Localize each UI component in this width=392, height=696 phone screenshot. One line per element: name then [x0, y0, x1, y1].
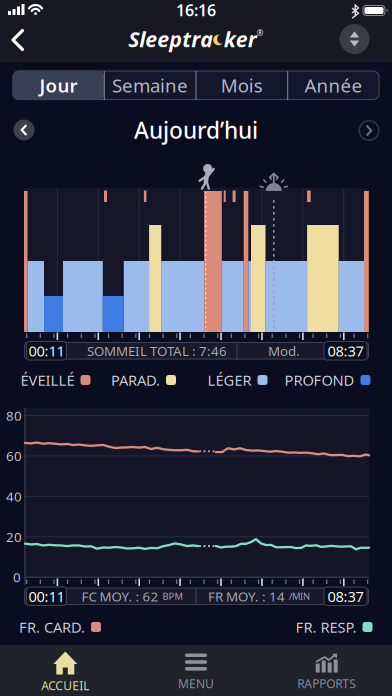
staticText: Mois	[221, 73, 263, 98]
staticText: ®	[257, 28, 264, 38]
staticText: FR. CARD.	[19, 617, 85, 637]
button[interactable]: MENU	[131, 647, 261, 696]
staticText: 0	[13, 568, 21, 586]
staticText: Sleeptra	[128, 25, 213, 53]
staticText: PARAD.	[111, 370, 160, 390]
button[interactable]: Semaine	[104, 70, 196, 100]
staticText: FR. RESP.	[295, 617, 356, 637]
staticText: 40	[6, 487, 22, 505]
staticText: 08:37	[327, 341, 363, 360]
staticText: FR MOY. : 14	[208, 587, 288, 605]
staticText: RAPPORTS	[297, 675, 356, 691]
staticText: 60	[6, 447, 22, 465]
staticText: ker	[224, 25, 257, 53]
staticText: 00:11	[28, 341, 64, 360]
button[interactable]: RAPPORTS	[262, 647, 392, 696]
staticText: Semaine	[112, 73, 188, 98]
staticText: Aujourd’hui	[134, 115, 258, 145]
staticText: LÉGER	[207, 370, 251, 390]
button[interactable]: Mois	[196, 70, 288, 100]
button[interactable]: Année	[288, 70, 379, 100]
staticText: 08:37	[327, 586, 363, 606]
staticText: BPM	[162, 590, 182, 602]
staticText: 20	[6, 528, 22, 546]
staticText: 16:16	[176, 0, 216, 21]
staticText: 80	[6, 407, 22, 424]
button[interactable]: Jour	[12, 70, 104, 100]
staticText: FC MOY. : 62	[81, 587, 161, 605]
staticText: ACCUEIL	[41, 677, 89, 693]
staticText: SOMMEIL TOTAL : 7:46	[87, 342, 227, 360]
button[interactable]: ACCUEIL	[0, 647, 130, 696]
staticText: 00:11	[28, 586, 64, 606]
staticText: Mod.	[268, 342, 300, 360]
button[interactable]: Back	[0, 22, 44, 58]
staticText: /MIN	[289, 590, 310, 602]
staticText: Jour	[39, 73, 77, 98]
button[interactable]: Adjust	[339, 24, 369, 54]
button[interactable]: Next day	[358, 120, 379, 141]
staticText: PROFOND	[284, 370, 354, 390]
staticText: MENU	[178, 676, 214, 691]
button[interactable]: Previous day	[13, 119, 34, 140]
staticText: Année	[304, 73, 362, 98]
staticText: ÉVEILLÉ	[20, 370, 74, 390]
